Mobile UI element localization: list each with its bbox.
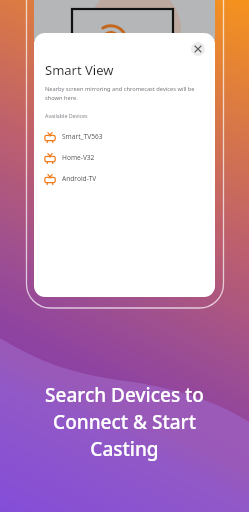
staticText: Available Devices [45,112,88,119]
staticText: Smart_TV563 [62,132,103,141]
staticText: Smart View [45,61,114,79]
button[interactable]: Home-V32 [34,147,215,168]
staticText: Android-TV [62,174,97,183]
staticText: Nearby screen mirroring and chromecast d… [45,85,207,101]
button[interactable]: Close [191,42,205,56]
staticText: Home-V32 [62,153,95,162]
button[interactable]: Smart_TV563 [34,126,215,147]
button[interactable]: Android-TV [34,168,215,189]
staticText: Search Devices to Connect & Start Castin… [45,382,204,462]
